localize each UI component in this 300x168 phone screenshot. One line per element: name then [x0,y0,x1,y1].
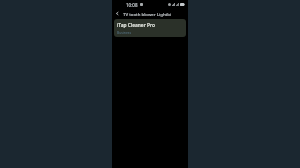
staticText: iTap Cleaner Pro [117,22,155,29]
staticText: Business [117,30,132,35]
button[interactable]: iTap Cleaner Pro [114,19,186,37]
button[interactable]: Back [114,10,121,17]
staticText: TV tooth blower Lightbi [123,11,172,17]
staticText: 10:08 [126,2,138,8]
